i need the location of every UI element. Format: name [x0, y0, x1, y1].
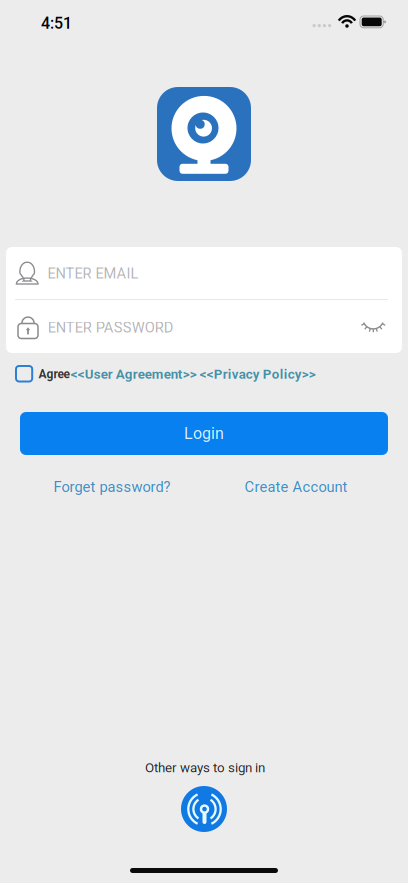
button[interactable]: Create Account [221, 475, 371, 499]
button[interactable]: Login [20, 412, 388, 455]
staticText: Agree [38, 367, 69, 381]
staticText: Login [184, 424, 224, 443]
staticText: ENTER EMAIL [47, 265, 138, 282]
staticText: ENTER PASSWORD [48, 319, 174, 336]
staticText: <<User Agreement>> <<Privacy Policy>> [71, 366, 316, 382]
staticText: 4:51 [41, 14, 72, 33]
staticText: Forget password? [53, 478, 170, 496]
staticText: Other ways to sign in [145, 760, 265, 776]
staticText: Create Account [244, 478, 347, 496]
button[interactable]: Forget password? [37, 475, 187, 499]
button[interactable]: Sign in with device [181, 786, 227, 832]
button[interactable]: Agree [15, 364, 317, 386]
